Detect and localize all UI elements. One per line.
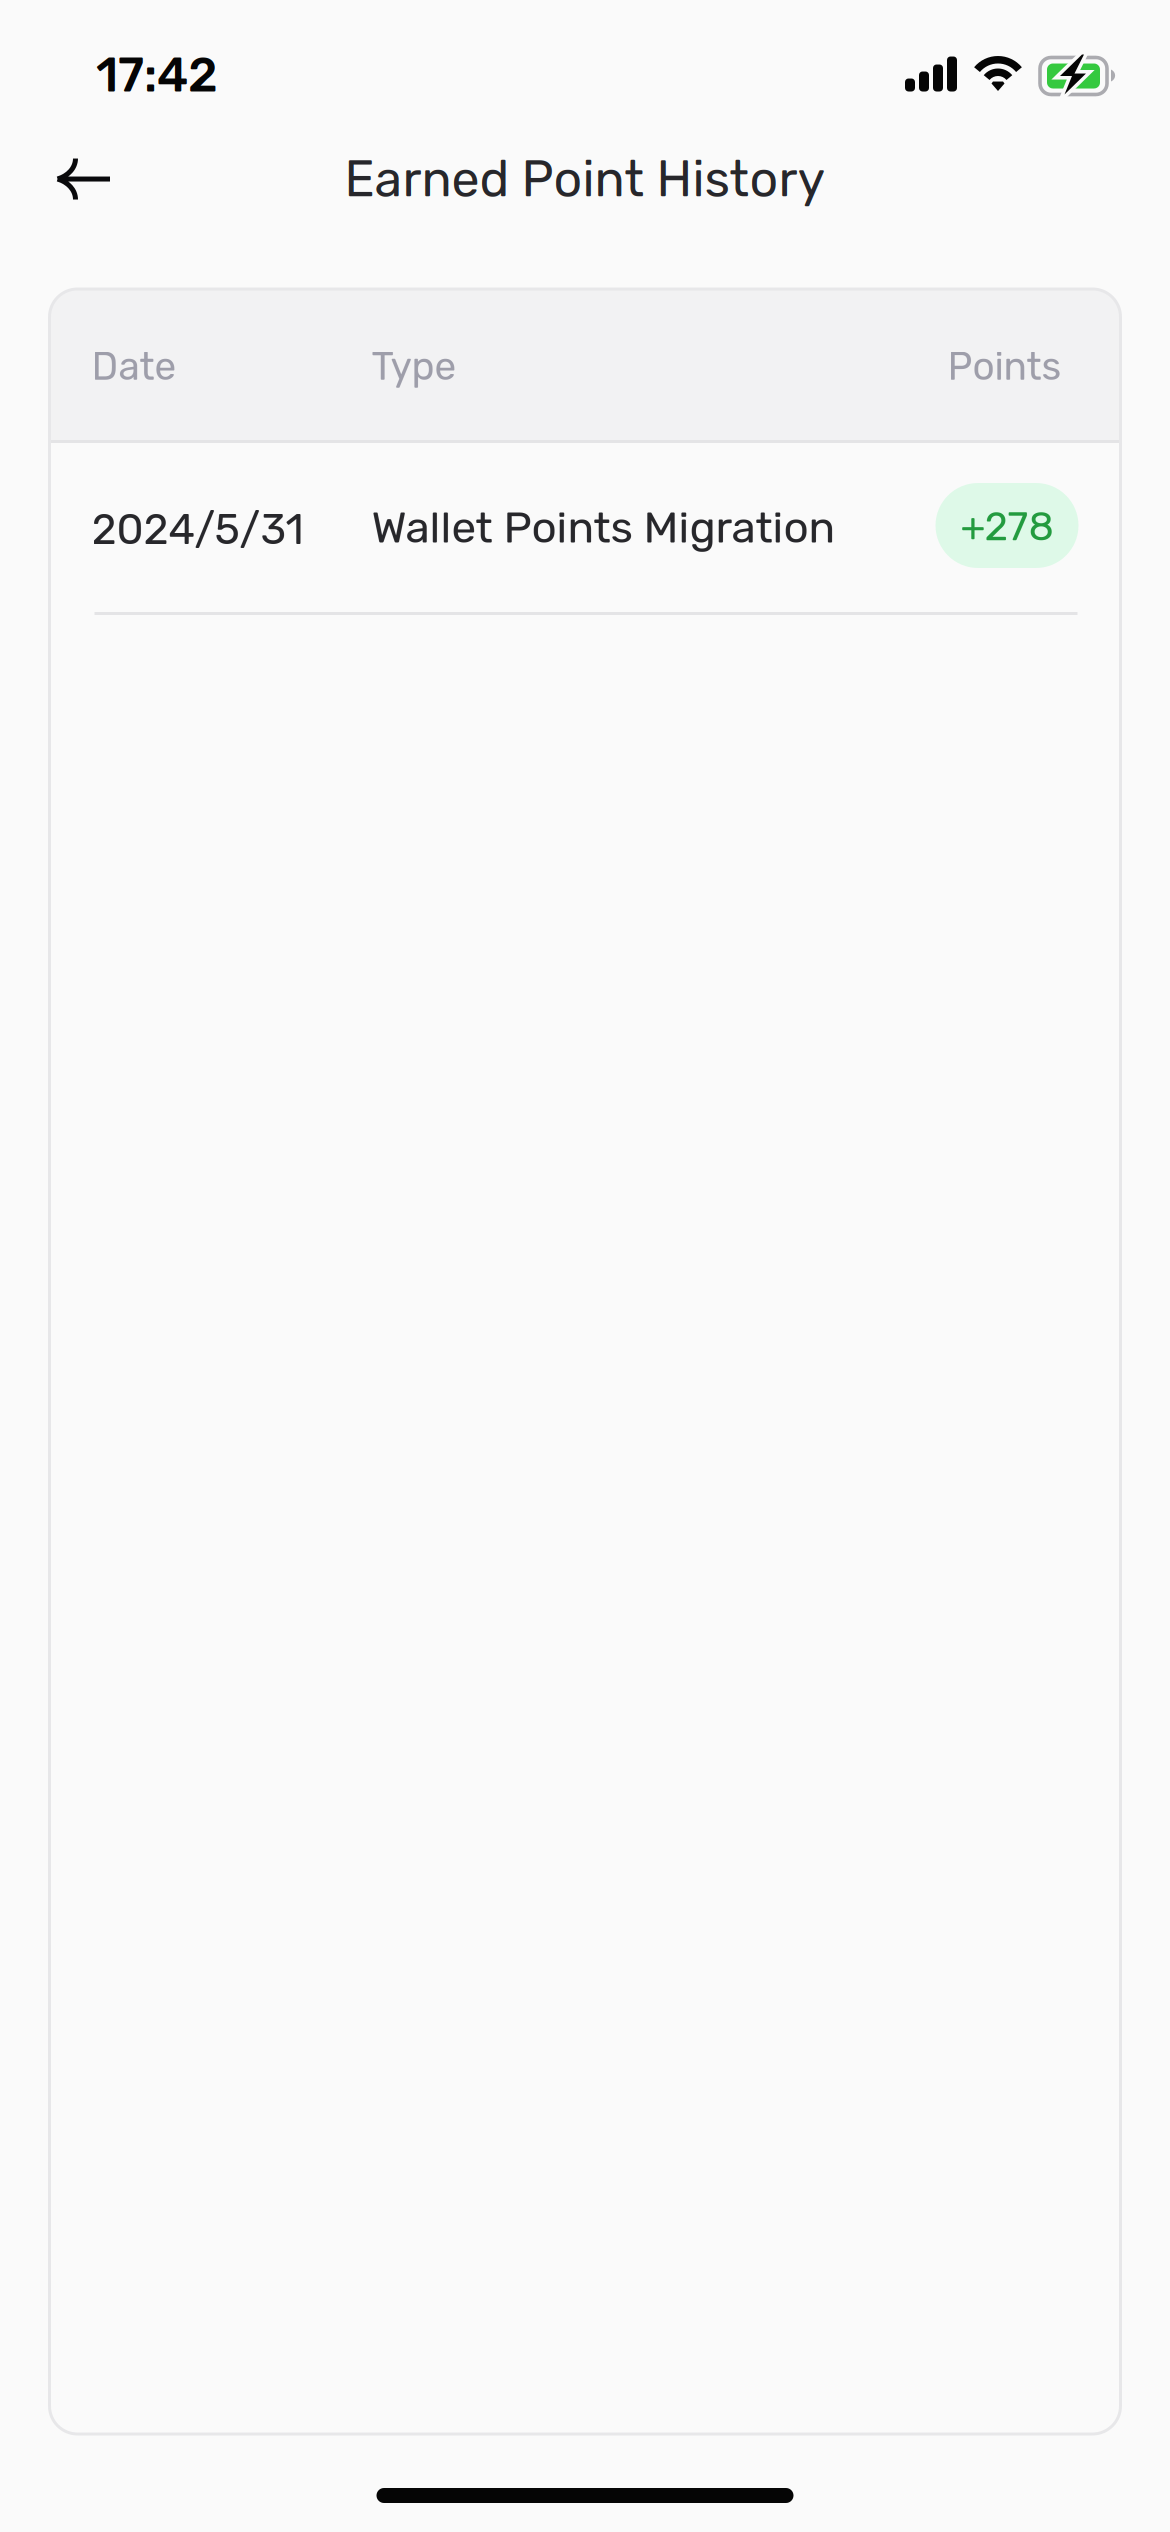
staticText: Earned Point History [344, 149, 825, 209]
staticText: Date [91, 344, 176, 389]
staticText: Type [371, 344, 456, 389]
staticText: +278 [960, 503, 1053, 550]
staticText: Wallet Points Migration [371, 501, 835, 553]
staticText: Points [947, 344, 1061, 389]
staticText: 17:42 [96, 47, 218, 103]
staticText: 2024/5/31 [91, 504, 303, 555]
button[interactable]: 2024/5/31 [49, 443, 1120, 615]
button[interactable]: Back [33, 129, 133, 229]
